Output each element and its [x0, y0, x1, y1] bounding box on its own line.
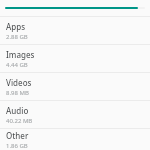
staticText: 40.22 MB: [6, 117, 33, 125]
button[interactable]: Audio: [0, 101, 150, 128]
staticText: 4.44 GB: [6, 61, 28, 69]
button[interactable]: Apps: [0, 17, 150, 44]
staticText: Images: [6, 49, 35, 60]
staticText: 2.88 GB: [6, 33, 28, 41]
staticText: Audio: [6, 105, 29, 116]
staticText: 8.98 MB: [6, 89, 29, 97]
button[interactable]: Other: [0, 129, 150, 150]
button[interactable]: Videos: [0, 73, 150, 100]
staticText: Apps: [6, 21, 26, 32]
button[interactable]: Images: [0, 45, 150, 72]
button[interactable]: Storage used: [0, 0, 150, 16]
staticText: Videos: [6, 77, 32, 88]
staticText: 1.86 GB: [6, 142, 28, 150]
staticText: Other: [6, 130, 29, 141]
